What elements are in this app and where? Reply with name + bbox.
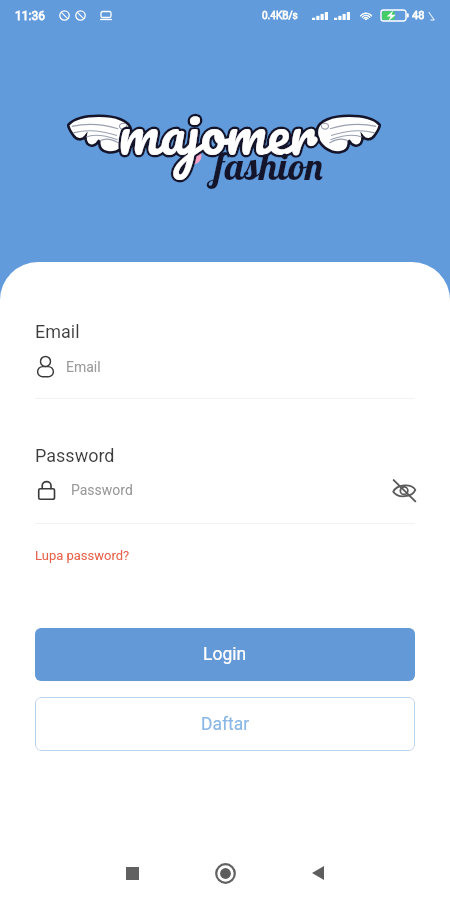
staticText: majomer [118,82,317,180]
staticText: 0.4KB/s [262,10,298,22]
staticText: Password [35,445,115,466]
button[interactable]: Login [35,628,415,681]
staticText: majomer [118,82,317,180]
button[interactable]: Recents [99,841,165,900]
staticText: Login [203,644,247,665]
staticText: fashion [214,142,325,190]
staticText: Daftar [201,714,250,735]
button[interactable]: Show password [389,475,419,505]
button[interactable]: Lupa password? [35,546,130,565]
staticText: Email [66,359,101,375]
button[interactable]: Daftar [35,697,415,751]
staticText: Lupa password? [35,548,130,563]
staticText: Password [71,482,133,498]
staticText: 11:36 [15,9,45,23]
button[interactable]: Home [192,841,258,900]
button[interactable]: Back [285,841,351,900]
staticText: Email [35,321,80,342]
staticText: 48 [412,9,425,22]
